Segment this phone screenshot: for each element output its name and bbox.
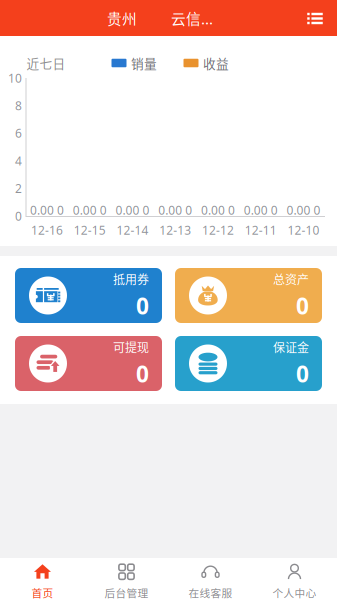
button[interactable]: 贵州 xyxy=(103,3,141,33)
button[interactable]: 保证金 xyxy=(175,336,322,391)
button[interactable]: 可提现 xyxy=(15,336,162,391)
staticText: 4 xyxy=(15,153,22,169)
staticText: 个人中心 xyxy=(272,585,316,600)
staticText: 0 xyxy=(136,291,149,321)
button[interactable]: 个人中心 xyxy=(252,558,336,600)
staticText: 0.00 xyxy=(244,202,268,218)
staticText: 0 xyxy=(136,359,149,389)
staticText: 可提现 xyxy=(113,338,149,356)
staticText: 0 xyxy=(142,202,149,218)
staticText: 12-12 xyxy=(202,222,234,238)
staticText: 0 xyxy=(296,359,309,389)
button[interactable]: 首页 xyxy=(0,558,84,600)
staticText: 近七日 xyxy=(26,54,65,72)
staticText: 0.00 xyxy=(30,202,54,218)
staticText: 0 xyxy=(314,202,321,218)
staticText: 12-10 xyxy=(288,222,320,238)
staticText: 0.00 xyxy=(73,202,97,218)
staticText: 0.00 xyxy=(115,202,139,218)
staticText: 0 xyxy=(228,202,235,218)
staticText: 0 xyxy=(296,291,309,321)
staticText: 云信... xyxy=(171,7,213,29)
button[interactable]: 在线客服 xyxy=(168,558,252,600)
staticText: 0.00 xyxy=(287,202,311,218)
button[interactable]: 后台管理 xyxy=(84,558,168,600)
staticText: 总资产 xyxy=(273,270,309,288)
staticText: 抵用券 xyxy=(113,270,149,288)
staticText: 10 xyxy=(8,70,22,86)
staticText: 0.00 xyxy=(201,202,225,218)
staticText: 12-15 xyxy=(74,222,106,238)
button[interactable]: 云信... xyxy=(164,3,220,33)
staticText: 12-11 xyxy=(245,222,277,238)
staticText: 0 xyxy=(100,202,107,218)
staticText: 后台管理 xyxy=(104,585,148,600)
staticText: 2 xyxy=(15,180,22,196)
staticText: 销量 xyxy=(131,54,157,72)
button[interactable]: 抵用券 xyxy=(15,268,162,323)
staticText: 保证金 xyxy=(273,338,309,356)
staticText: 首页 xyxy=(31,585,53,600)
staticText: 12-13 xyxy=(159,222,191,238)
staticText: 贵州 xyxy=(107,7,137,29)
button[interactable]: 总资产 xyxy=(175,268,322,323)
staticText: 8 xyxy=(15,98,22,113)
staticText: 6 xyxy=(15,125,22,141)
staticText: 0 xyxy=(271,202,278,218)
staticText: 收益 xyxy=(203,54,229,72)
staticText: 12-16 xyxy=(31,222,63,238)
staticText: 0 xyxy=(57,202,64,218)
staticText: 0.00 xyxy=(158,202,182,218)
staticText: 0 xyxy=(185,202,192,218)
staticText: 12-14 xyxy=(116,222,148,238)
staticText: 0 xyxy=(15,208,22,224)
staticText: 在线客服 xyxy=(188,585,232,600)
button[interactable]: 菜单 xyxy=(297,2,333,34)
